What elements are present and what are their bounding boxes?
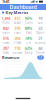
- staticText: 96%: [25, 16, 33, 21]
- button[interactable]: 118: [11, 45, 23, 55]
- button[interactable]: 22: [34, 25, 46, 35]
- staticText: Carts: [14, 31, 20, 34]
- staticText: 7d: [39, 56, 43, 59]
- staticText: 287: [3, 46, 9, 51]
- button[interactable]: 516: [0, 35, 11, 45]
- staticText: 516: [3, 36, 9, 41]
- button[interactable]: 88%: [23, 25, 34, 35]
- button[interactable]: 44: [34, 45, 46, 55]
- staticText: 88%: [25, 26, 33, 31]
- staticText: Renew: [13, 51, 22, 54]
- staticText: Trials: [3, 51, 9, 54]
- staticText: Revenue: [2, 55, 19, 60]
- staticText: 44: [38, 46, 42, 51]
- staticText: Churn: [36, 51, 45, 54]
- staticText: Conv: [25, 21, 32, 24]
- button[interactable]: 18: [34, 15, 46, 25]
- staticText: 412: [14, 16, 20, 21]
- staticText: Keep: [25, 51, 33, 54]
- staticText: Clicks: [14, 41, 21, 44]
- staticText: Visits: [2, 21, 9, 24]
- staticText: Paid: [26, 31, 32, 34]
- staticText: Views: [2, 41, 9, 44]
- staticText: 310: [14, 26, 20, 31]
- staticText: 62%: [25, 46, 33, 51]
- staticText: Key Metrics: [5, 10, 28, 15]
- staticText: Users: [2, 31, 9, 34]
- button[interactable]: 310: [11, 25, 23, 35]
- button[interactable]: 412: [11, 15, 23, 25]
- staticText: 22: [38, 26, 42, 31]
- button[interactable]: 7d: [37, 55, 44, 60]
- button[interactable]: 204: [11, 35, 23, 45]
- button[interactable]: 62%: [23, 45, 34, 55]
- staticText: 842: [3, 26, 9, 31]
- button[interactable]: 96%: [23, 15, 34, 25]
- staticText: 31: [38, 36, 42, 41]
- staticText: Leads: [14, 21, 21, 24]
- button[interactable]: 31: [34, 35, 46, 45]
- staticText: Dashboard: [9, 3, 36, 11]
- button[interactable]: 74%: [23, 35, 34, 45]
- button[interactable]: 287: [0, 45, 11, 55]
- staticText: 18: [38, 16, 42, 21]
- staticText: 118: [14, 46, 20, 51]
- staticText: 1,284: [1, 16, 10, 21]
- button[interactable]: 842: [0, 25, 11, 35]
- staticText: 74%: [25, 36, 33, 41]
- staticText: Bounce: [35, 41, 46, 44]
- staticText: 9:41: [2, 0, 9, 4]
- staticText: Lost: [38, 21, 43, 24]
- staticText: 204: [14, 36, 20, 41]
- button[interactable]: 1,284: [0, 15, 11, 25]
- staticText: Open: [36, 31, 44, 34]
- staticText: CTR: [26, 41, 31, 44]
